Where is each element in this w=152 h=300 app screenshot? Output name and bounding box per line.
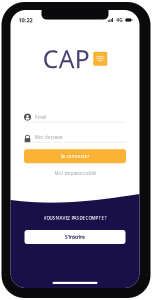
staticText: 4G <box>116 17 122 23</box>
staticText: Mot de passe <box>35 134 62 140</box>
staticText: 10:22 <box>18 16 32 24</box>
staticText: S'inscrire <box>65 234 85 240</box>
button[interactable]: Mot de passe oublié <box>24 171 126 176</box>
staticText: Mot de passe oublié <box>54 170 95 176</box>
staticText: CAP <box>43 42 90 76</box>
staticText: VOUS N'AVEZ PAS DE COMPTE ? <box>43 215 106 221</box>
staticText: E-mail <box>35 114 46 120</box>
button[interactable]: Se connecter <box>24 149 126 163</box>
button[interactable]: S'inscrire <box>24 230 125 244</box>
staticText: Se connecter <box>60 153 89 159</box>
